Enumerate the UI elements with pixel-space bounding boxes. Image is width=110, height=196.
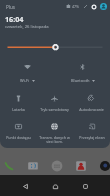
button[interactable]: Back xyxy=(16,175,34,193)
button[interactable]: Wi-Fi xyxy=(0,63,55,85)
staticText: Wi-Fi xyxy=(20,78,30,83)
staticText: 47% xyxy=(72,4,80,9)
staticText: Tryb samolotowy xyxy=(40,107,69,112)
button[interactable]: Przesyłaj ekran xyxy=(73,122,110,144)
button[interactable]: Punkt dostępu xyxy=(0,122,36,144)
button[interactable]: Tryb samolotowy xyxy=(36,94,73,116)
button[interactable]: camera xyxy=(99,160,110,172)
staticText: Bluetooth xyxy=(71,78,90,83)
button[interactable]: Bluetooth xyxy=(55,63,110,85)
button[interactable]: mail xyxy=(75,160,87,172)
button[interactable]: phone xyxy=(3,160,15,172)
button[interactable]: Brightness xyxy=(0,41,110,53)
staticText: czwartek, 26 listopada xyxy=(5,24,49,30)
staticText: Przesyłaj ekran xyxy=(79,135,105,140)
button[interactable]: Recents xyxy=(76,175,94,193)
staticText: Autoobracanie xyxy=(79,107,104,112)
button[interactable]: Transm. danych w sieci kom. xyxy=(36,122,73,144)
staticText: 16:04 xyxy=(5,14,24,24)
button[interactable]: Latarka xyxy=(0,94,36,116)
button[interactable]: Home xyxy=(46,175,64,193)
button[interactable]: Autoobracanie xyxy=(73,94,110,116)
staticText: Transm. danych w sieci kom. xyxy=(37,135,72,144)
button[interactable]: sms xyxy=(27,160,39,172)
staticText: Latarka xyxy=(12,107,25,112)
staticText: Plus xyxy=(6,4,16,10)
staticText: Punkt dostępu xyxy=(6,135,31,140)
button[interactable]: apps xyxy=(51,160,63,172)
